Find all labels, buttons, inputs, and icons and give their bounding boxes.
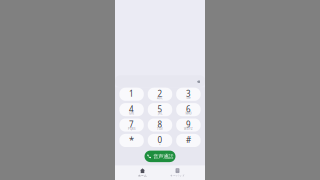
staticText: 音声通話 [153, 153, 173, 160]
staticText: 6 [186, 104, 191, 114]
button[interactable]: ホーム [132, 166, 152, 180]
staticText: ホーム [138, 174, 147, 177]
button[interactable]: Delete [195, 79, 202, 85]
staticText: TUV [157, 127, 163, 131]
staticText [131, 96, 132, 100]
staticText: 3 [186, 88, 191, 99]
staticText: DEF [186, 96, 190, 100]
button[interactable]: 音声通話 [144, 151, 175, 162]
button[interactable]: キーパッド [167, 166, 187, 180]
staticText [188, 142, 189, 146]
button[interactable]: 2 [148, 88, 172, 101]
staticText: 5 [157, 104, 162, 114]
staticText: 0 [157, 135, 162, 145]
staticText: 7 [129, 119, 134, 130]
button[interactable]: 6 [176, 103, 201, 116]
staticText: MNO [185, 112, 191, 115]
staticText: 2 [157, 88, 162, 99]
button[interactable]: 5 [148, 103, 172, 116]
staticText: GHI [129, 112, 134, 115]
staticText: + [159, 142, 161, 146]
button[interactable]: 1 [119, 88, 144, 101]
staticText: PQRS [128, 127, 135, 131]
staticText: キーパッド [170, 174, 185, 177]
staticText: ABC [157, 96, 163, 100]
button[interactable]: # [176, 134, 201, 147]
staticText: 1 [129, 88, 134, 99]
button[interactable]: 0 [148, 134, 172, 147]
staticText: 8 [157, 119, 162, 130]
button[interactable]: 9 [176, 118, 201, 132]
button[interactable]: 4 [119, 103, 144, 116]
button[interactable]: 8 [148, 118, 172, 132]
button[interactable]: * [119, 134, 144, 147]
staticText: WXYZ [184, 127, 193, 131]
button[interactable]: 3 [176, 88, 201, 101]
button[interactable]: 7 [119, 118, 144, 132]
staticText: * [129, 134, 134, 146]
staticText: JKL [158, 112, 162, 115]
staticText: # [186, 135, 191, 145]
staticText: 9 [186, 119, 191, 130]
staticText: 4 [129, 104, 134, 114]
